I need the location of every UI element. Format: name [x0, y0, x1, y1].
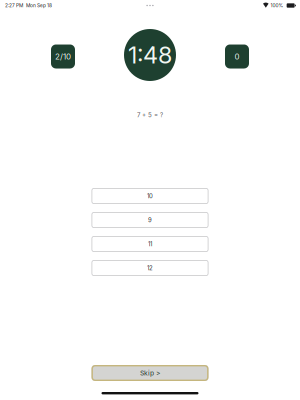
staticText: 11	[148, 240, 152, 248]
button[interactable]: Skip >	[91, 365, 208, 381]
button[interactable]: 0	[225, 44, 249, 68]
staticText: Skip >	[140, 369, 160, 377]
staticText: 10	[147, 192, 153, 200]
staticText: 9	[148, 216, 152, 224]
staticText: 0	[234, 52, 239, 61]
button[interactable]: 9	[91, 212, 208, 228]
button[interactable]: 2/10	[51, 44, 75, 68]
staticText: 7 + 5 = ?	[137, 111, 163, 119]
staticText: 2/10	[55, 52, 71, 61]
button[interactable]: 12	[91, 260, 208, 276]
staticText: 12	[147, 264, 153, 272]
button[interactable]: 11	[91, 236, 208, 252]
staticText: 100%	[271, 3, 284, 8]
staticText: 2:27 PM	[5, 3, 23, 8]
staticText: 1:48	[128, 41, 172, 69]
staticText: Mon Sep 18	[26, 3, 52, 8]
button[interactable]: 10	[91, 188, 208, 204]
